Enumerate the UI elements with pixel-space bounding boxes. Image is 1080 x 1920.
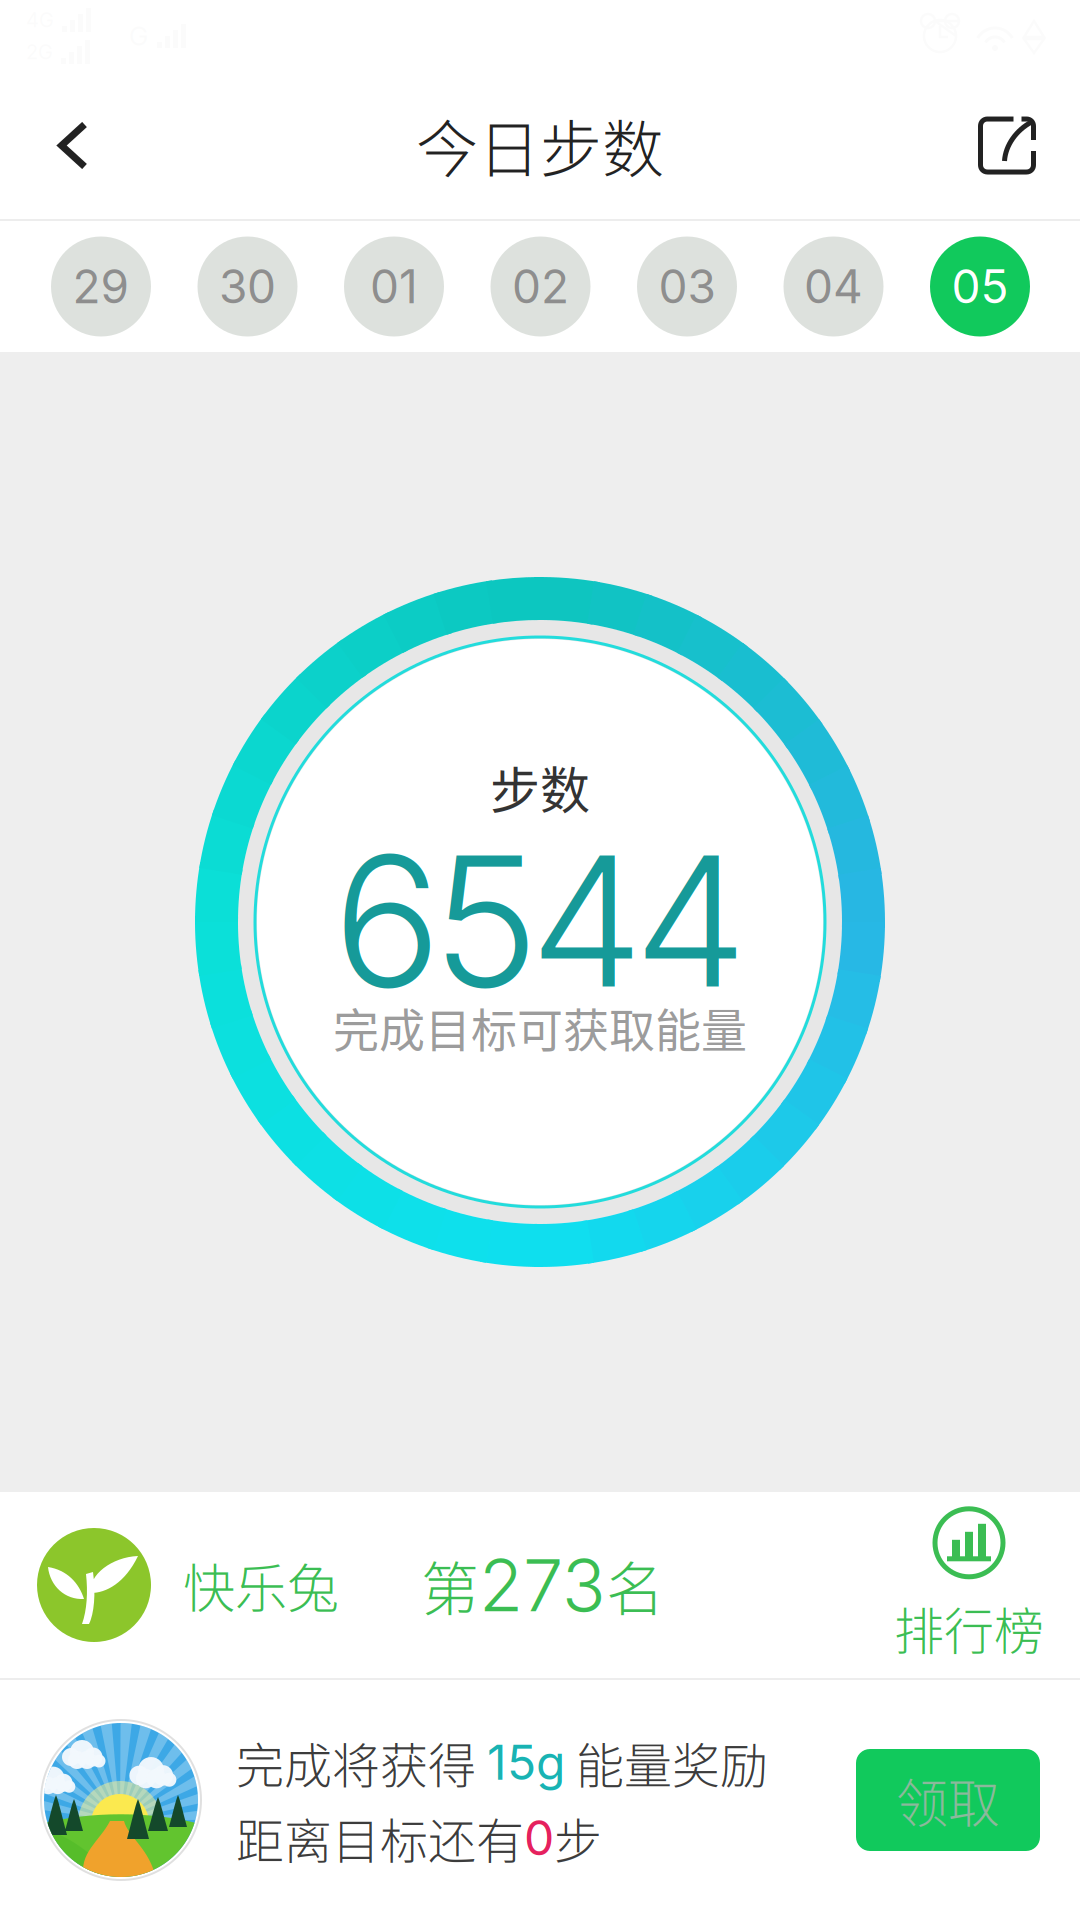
staticText: 05 — [951, 259, 1008, 314]
button[interactable]: 05 — [930, 236, 1030, 336]
staticText: 01 — [370, 259, 418, 314]
staticText: 03 — [658, 259, 715, 314]
staticText: 步数 — [490, 751, 590, 823]
staticText: 15g — [487, 1733, 565, 1791]
staticText: 30 — [219, 259, 276, 314]
button[interactable]: 30 — [197, 236, 297, 336]
button[interactable]: 排行榜 — [894, 1506, 1044, 1664]
staticText: 04 — [804, 259, 863, 314]
staticText: 能量奖励 — [565, 1727, 768, 1797]
staticText: 排行榜 — [894, 1592, 1044, 1664]
button[interactable]: 01 — [344, 236, 444, 336]
staticText: 步 — [554, 1803, 602, 1872]
staticText: 领取 — [896, 1762, 1000, 1838]
button[interactable]: 04 — [783, 236, 883, 336]
button[interactable]: 29 — [51, 236, 151, 336]
button[interactable]: Back — [0, 72, 146, 219]
staticText: 273 — [479, 1541, 606, 1628]
staticText: 完成目标可获取能量 — [333, 994, 747, 1060]
staticText: 名 — [606, 1543, 664, 1627]
staticText: 0 — [524, 1809, 554, 1867]
staticText: 6544 — [333, 812, 747, 1030]
staticText: 距离目标还有 — [236, 1803, 524, 1872]
staticText: 完成将获得 — [236, 1727, 487, 1797]
staticText: 今日步数 — [416, 101, 664, 190]
staticText: 第 — [421, 1543, 479, 1627]
button[interactable]: Share — [934, 72, 1080, 219]
staticText: 29 — [72, 259, 129, 314]
button[interactable]: 领取 — [856, 1749, 1040, 1851]
staticText: 快乐兔 — [183, 1547, 339, 1623]
staticText: 02 — [512, 259, 569, 314]
button[interactable]: 02 — [490, 236, 590, 336]
button[interactable]: 03 — [637, 236, 737, 336]
